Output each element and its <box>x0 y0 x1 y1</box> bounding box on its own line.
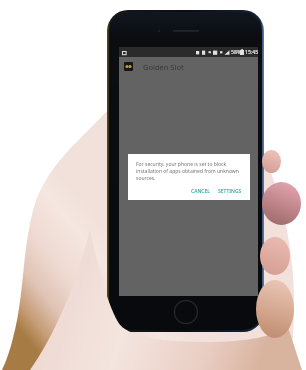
staticText: For security, your phone is set to block… <box>136 161 242 182</box>
button[interactable]: CANCEL <box>191 188 210 195</box>
staticText: 15:45 <box>245 48 259 55</box>
staticText: SETTINGS <box>218 188 242 195</box>
staticText: 58% <box>231 48 242 55</box>
staticText: Golden Slot <box>143 62 184 72</box>
button[interactable]: SETTINGS <box>218 188 242 195</box>
button[interactable]: App icon <box>124 62 133 71</box>
staticText: CANCEL <box>191 188 210 195</box>
